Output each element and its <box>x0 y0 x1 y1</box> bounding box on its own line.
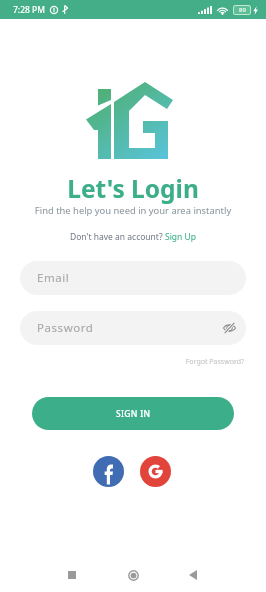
button[interactable]: Home <box>120 562 146 588</box>
button[interactable]: Back <box>180 562 206 588</box>
staticText: Let's Login <box>0 172 266 205</box>
staticText: 89 <box>239 6 246 14</box>
button[interactable]: Show password <box>223 323 236 333</box>
staticText: Don't have an account? <box>70 231 165 243</box>
staticText: Find the help you need in your area inst… <box>0 204 266 217</box>
button[interactable]: Password <box>20 311 246 345</box>
button[interactable]: Recents <box>59 562 85 588</box>
staticText: Email <box>37 270 70 286</box>
button[interactable]: SIGN IN <box>32 397 234 430</box>
staticText: Password <box>37 320 94 336</box>
staticText: 7:28 PM <box>13 4 45 16</box>
staticText: SIGN IN <box>116 408 151 420</box>
button[interactable]: Sign Up <box>165 231 196 243</box>
button[interactable]: Forgot Password? <box>0 357 244 367</box>
button[interactable]: Sign in with Facebook <box>93 456 124 487</box>
button[interactable]: Email <box>20 261 246 295</box>
button[interactable]: Sign in with Google <box>140 456 171 487</box>
